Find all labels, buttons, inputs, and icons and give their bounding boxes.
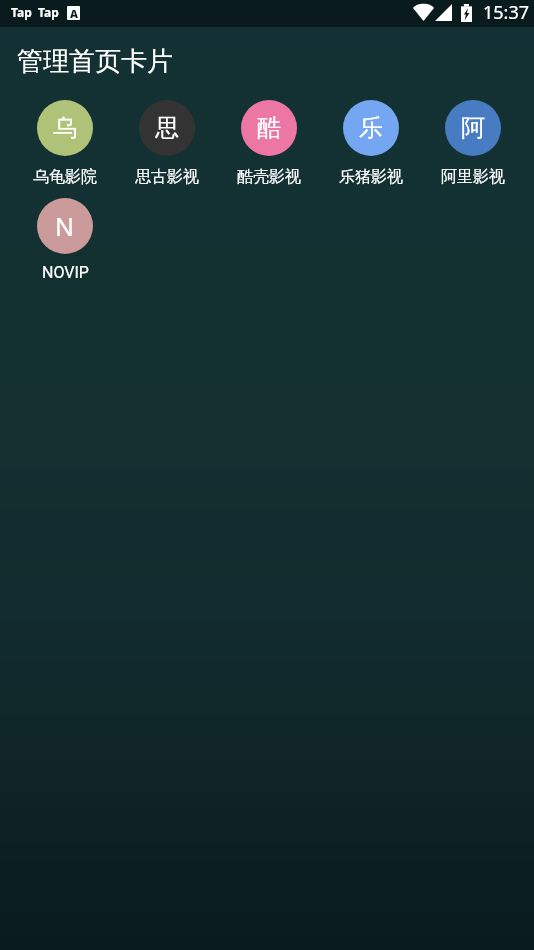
staticText: 酷壳影视: [237, 167, 301, 187]
button[interactable]: N: [14, 198, 116, 295]
staticText: 酷: [257, 113, 281, 143]
staticText: 阿: [461, 113, 485, 143]
staticText: N: [55, 209, 75, 243]
staticText: 思古影视: [135, 167, 199, 187]
staticText: NOVIP: [42, 263, 89, 282]
other: Mobile signal: [435, 4, 452, 21]
button[interactable]: 乌: [14, 100, 116, 198]
staticText: 思: [155, 113, 179, 143]
staticText: 15:37: [483, 0, 530, 25]
staticText: Tap: [38, 4, 59, 20]
button[interactable]: 阿: [422, 100, 524, 198]
staticText: 乐: [359, 113, 383, 143]
button[interactable]: 乐: [320, 100, 422, 198]
staticText: Tap: [11, 4, 32, 20]
staticText: 乌: [53, 113, 77, 143]
other: Battery charging: [461, 4, 472, 22]
staticText: 阿里影视: [441, 167, 505, 187]
staticText: A: [70, 6, 78, 20]
button[interactable]: 思: [116, 100, 218, 198]
staticText: 乐猪影视: [339, 167, 403, 187]
button[interactable]: 酷: [218, 100, 320, 198]
other: Wi-Fi signal: [413, 4, 434, 21]
staticText: 乌龟影院: [33, 167, 97, 187]
staticText: 管理首页卡片: [17, 45, 173, 78]
